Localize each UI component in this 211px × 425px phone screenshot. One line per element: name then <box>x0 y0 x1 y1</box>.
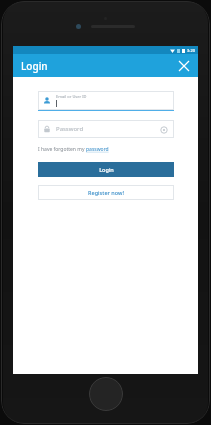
staticText: password <box>86 146 109 153</box>
other: Home <box>89 377 123 411</box>
button[interactable]: Login <box>38 162 174 177</box>
button[interactable]: I have forgotten my <box>38 146 174 153</box>
staticText: Register now! <box>88 189 124 196</box>
staticText: Login <box>21 59 48 73</box>
button[interactable]: Close <box>175 57 193 75</box>
staticText: Login <box>99 166 114 173</box>
staticText: Email or User ID <box>56 94 87 99</box>
button[interactable]: Show password <box>158 124 169 135</box>
button[interactable]: Register now! <box>38 185 174 200</box>
staticText: 3:20 <box>187 48 195 53</box>
button[interactable]: Email or User ID <box>38 91 174 111</box>
button[interactable]: Password <box>38 120 174 138</box>
staticText: Password <box>56 125 158 133</box>
staticText: I have forgotten my <box>38 146 86 153</box>
